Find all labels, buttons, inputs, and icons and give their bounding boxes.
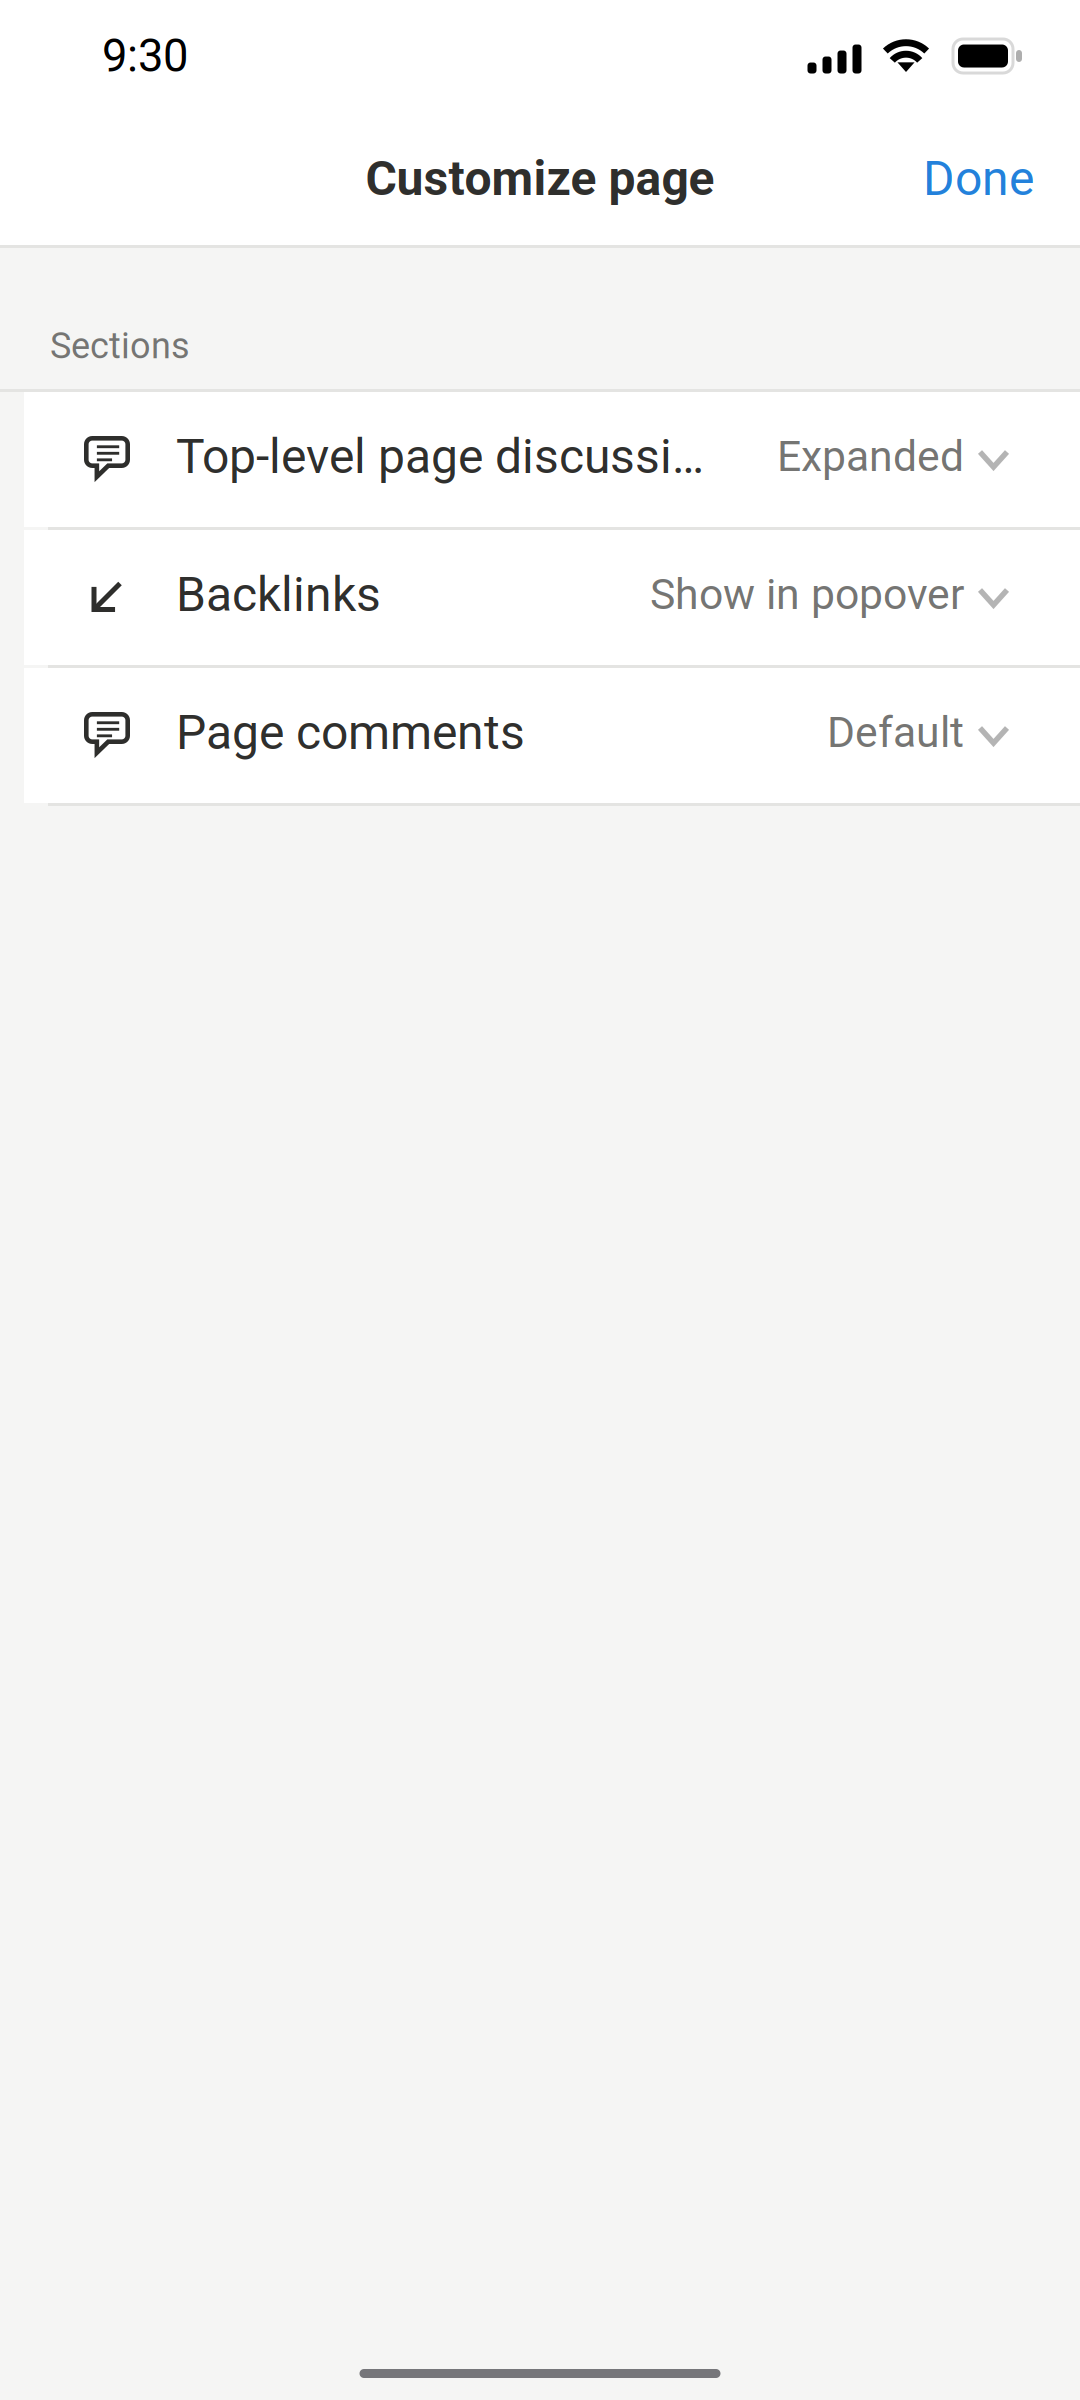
staticText: Done xyxy=(923,150,1034,207)
button[interactable]: Done xyxy=(923,134,1080,223)
button[interactable]: Backlinks xyxy=(24,530,1080,665)
staticText: Top-level page discussi… xyxy=(176,428,704,485)
staticText: Customize page xyxy=(365,150,714,207)
button[interactable]: Top-level page discussi… xyxy=(24,392,1080,527)
staticText: Backlinks xyxy=(176,566,381,623)
button[interactable]: Page comments xyxy=(24,668,1080,803)
staticText: Show in popover xyxy=(650,569,964,619)
staticText: Expanded xyxy=(777,431,964,481)
staticText: Default xyxy=(827,707,964,757)
staticText: Sections xyxy=(50,325,190,367)
staticText: 9:30 xyxy=(102,29,188,82)
staticText: Page comments xyxy=(176,704,525,761)
